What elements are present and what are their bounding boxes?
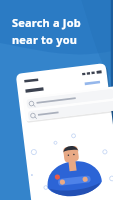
staticText: near to you	[12, 32, 78, 47]
staticText: Search a Job	[12, 15, 81, 30]
button[interactable]: Job search preview	[20, 82, 113, 200]
